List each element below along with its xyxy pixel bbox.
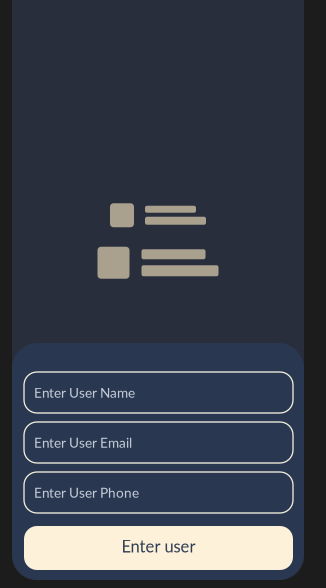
staticText: Enter User Name — [34, 384, 135, 401]
button[interactable]: Enter user — [24, 526, 293, 570]
staticText: Enter User Email — [34, 434, 132, 451]
button[interactable]: Enter User Email — [24, 422, 293, 463]
staticText: Enter user — [121, 536, 195, 556]
button[interactable]: Enter User Phone — [24, 472, 293, 513]
staticText: Enter User Phone — [34, 484, 139, 501]
button[interactable]: Enter User Name — [24, 372, 293, 413]
